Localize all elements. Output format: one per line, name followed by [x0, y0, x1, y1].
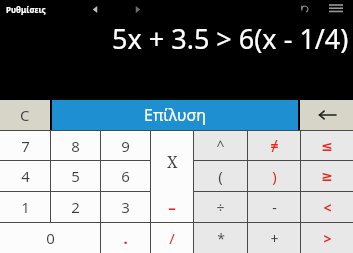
button[interactable]: C	[0, 100, 50, 130]
button[interactable]: Επίλυση	[52, 100, 298, 130]
button[interactable]: Backspace	[300, 100, 353, 130]
staticText: ≤	[321, 138, 333, 154]
staticText: 8	[71, 136, 80, 156]
staticText: 1	[21, 197, 30, 217]
button[interactable]: Menu	[327, 0, 345, 18]
staticText: )	[272, 166, 277, 186]
button[interactable]: 6	[101, 161, 150, 191]
staticText: .	[123, 228, 128, 248]
staticText: ≥	[321, 168, 333, 184]
staticText: 2	[71, 197, 80, 217]
button[interactable]: Undo	[297, 1, 313, 17]
staticText: -	[272, 198, 277, 217]
button[interactable]: ÷	[194, 192, 247, 222]
button[interactable]: -	[248, 192, 300, 222]
staticText: ÷	[216, 198, 225, 217]
button[interactable]: (	[194, 161, 247, 191]
button[interactable]: .	[101, 223, 150, 253]
staticText: –	[168, 197, 176, 217]
button[interactable]: 7	[0, 131, 50, 160]
button[interactable]: Ρυθμίσεις	[6, 4, 46, 15]
staticText: 9	[121, 136, 130, 156]
button[interactable]: 3	[101, 192, 150, 222]
button[interactable]: >	[301, 223, 353, 253]
staticText: +	[270, 229, 279, 248]
staticText: <	[323, 198, 332, 217]
staticText: 5x + 3.5 > 6(x - 1/4)	[112, 20, 349, 57]
button[interactable]: X	[151, 131, 193, 192]
button[interactable]: 4	[0, 161, 50, 191]
staticText: 4	[21, 166, 30, 186]
button[interactable]: ≤	[301, 131, 353, 160]
button[interactable]: –	[151, 192, 193, 222]
button[interactable]: )	[248, 161, 300, 191]
staticText: 0	[46, 228, 55, 248]
button[interactable]: 8	[51, 131, 100, 160]
button[interactable]: +	[248, 223, 300, 253]
button[interactable]: ≠	[248, 131, 300, 160]
staticText: 3	[121, 197, 130, 217]
button[interactable]: /	[151, 223, 193, 253]
button[interactable]: *	[194, 223, 247, 253]
button[interactable]: Next	[130, 2, 144, 16]
staticText: >	[323, 229, 332, 248]
staticText: Επίλυση	[144, 104, 207, 126]
button[interactable]: 2	[51, 192, 100, 222]
staticText: (	[218, 166, 223, 186]
staticText: 7	[21, 136, 30, 156]
button[interactable]: 0	[0, 223, 100, 253]
button[interactable]: 5x + 3.5 > 6(x - 1/4)	[0, 18, 353, 100]
staticText: ^	[216, 136, 225, 155]
staticText: X	[167, 151, 178, 173]
button[interactable]: <	[301, 192, 353, 222]
staticText: /	[169, 228, 175, 248]
button[interactable]: ≥	[301, 161, 353, 191]
button[interactable]: 9	[101, 131, 150, 160]
staticText: C	[20, 105, 30, 125]
button[interactable]: ^	[194, 131, 247, 160]
staticText: 5	[71, 166, 80, 186]
button[interactable]: 1	[0, 192, 50, 222]
staticText: ≠	[270, 136, 279, 155]
staticText: 6	[121, 166, 130, 186]
button[interactable]: Previous	[88, 2, 102, 16]
button[interactable]: 5	[51, 161, 100, 191]
staticText: *	[217, 229, 225, 248]
